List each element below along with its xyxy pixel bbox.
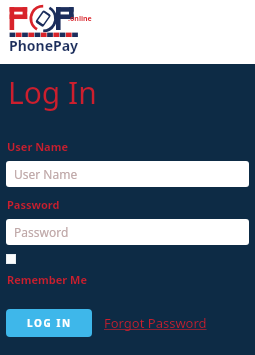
staticText: PhonePay [9, 36, 79, 55]
button[interactable]: User Name [6, 161, 249, 187]
staticText: Forgot Password [104, 314, 207, 332]
button[interactable]: LOG IN [6, 309, 92, 337]
button[interactable]: Forgot Password [102, 311, 209, 335]
staticText: Password [14, 224, 69, 240]
staticText: .online [68, 14, 92, 24]
staticText: Password [7, 197, 60, 212]
button[interactable]: Remember Me checkbox [6, 254, 16, 264]
staticText: User Name [7, 139, 69, 154]
staticText: Remember Me [7, 272, 88, 287]
button[interactable]: Password [6, 219, 249, 245]
staticText: User Name [14, 166, 78, 182]
staticText: Log In [8, 72, 97, 113]
staticText: LOG IN [27, 316, 72, 330]
